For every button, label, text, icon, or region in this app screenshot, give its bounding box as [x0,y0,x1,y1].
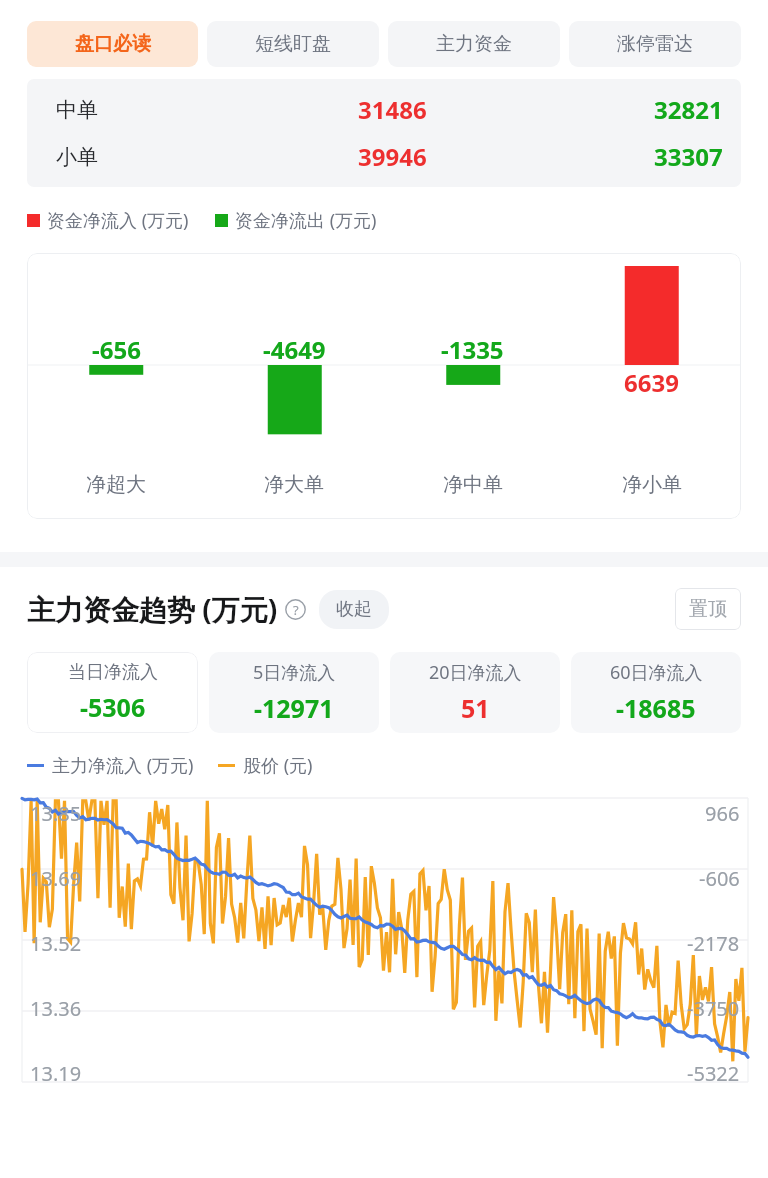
staticText: -18685 [616,691,696,725]
staticText: 966 [705,800,740,827]
staticText: 净中单 [443,472,503,497]
staticText: -5322 [687,1060,740,1087]
button[interactable]: 短线盯盘 [207,21,379,67]
staticText: -656 [92,333,141,366]
staticText: 主力资金趋势 (万元) [27,590,278,628]
staticText: -3750 [687,995,740,1022]
staticText: 收起 [336,598,372,621]
button[interactable]: 60日净流入 [571,652,741,733]
button[interactable]: 中单 [27,86,741,133]
button[interactable]: Help [285,599,306,620]
staticText: 资金净流入 (万元) [47,208,189,233]
staticText: 盘口必读 [75,32,151,56]
staticText: 33307 [654,140,723,173]
staticText: 净大单 [264,472,324,497]
staticText: 主力净流入 (万元) [52,753,194,778]
staticText: 20日净流入 [429,660,522,685]
button[interactable]: 5日净流入 [209,652,379,733]
staticText: 中单 [56,97,98,123]
staticText: 短线盯盘 [255,32,331,56]
button[interactable]: 涨停雷达 [569,21,741,67]
staticText: 净超大 [86,472,146,497]
staticText: 31486 [358,93,427,126]
staticText: 13.19 [30,1060,82,1087]
staticText: -606 [699,865,740,892]
staticText: 资金净流出 (万元) [235,208,377,233]
staticText: 小单 [56,144,98,170]
staticText: 净小单 [622,472,682,497]
staticText: 置顶 [689,597,727,621]
button[interactable]: 20日净流入 [390,652,560,733]
button[interactable]: 主力资金 [388,21,560,67]
staticText: 13.36 [30,995,82,1022]
staticText: 51 [461,691,490,725]
staticText: 39946 [358,140,427,173]
button[interactable]: 小单 [27,133,741,180]
staticText: -12971 [254,691,334,725]
button[interactable]: 置顶 [675,588,741,630]
staticText: 13.52 [30,930,82,957]
staticText: 60日净流入 [610,660,703,685]
button[interactable]: 盘口必读 [27,21,198,67]
staticText: ? [293,601,299,619]
staticText: -4649 [263,333,326,366]
staticText: 5日净流入 [253,660,336,685]
button[interactable]: 当日净流入 [27,652,198,733]
button[interactable]: 收起 [319,590,389,629]
staticText: 13.69 [30,865,82,892]
staticText: 6639 [624,366,679,399]
staticText: 当日净流入 [68,661,158,684]
staticText: 涨停雷达 [617,32,693,56]
staticText: -2178 [687,930,740,957]
button[interactable]: -656 [27,253,741,519]
staticText: 股价 (元) [243,753,313,778]
staticText: -1335 [441,333,504,366]
staticText: 主力资金 [436,32,512,56]
staticText: -5306 [80,690,146,724]
staticText: 32821 [654,93,723,126]
staticText: 13.85 [30,800,82,827]
